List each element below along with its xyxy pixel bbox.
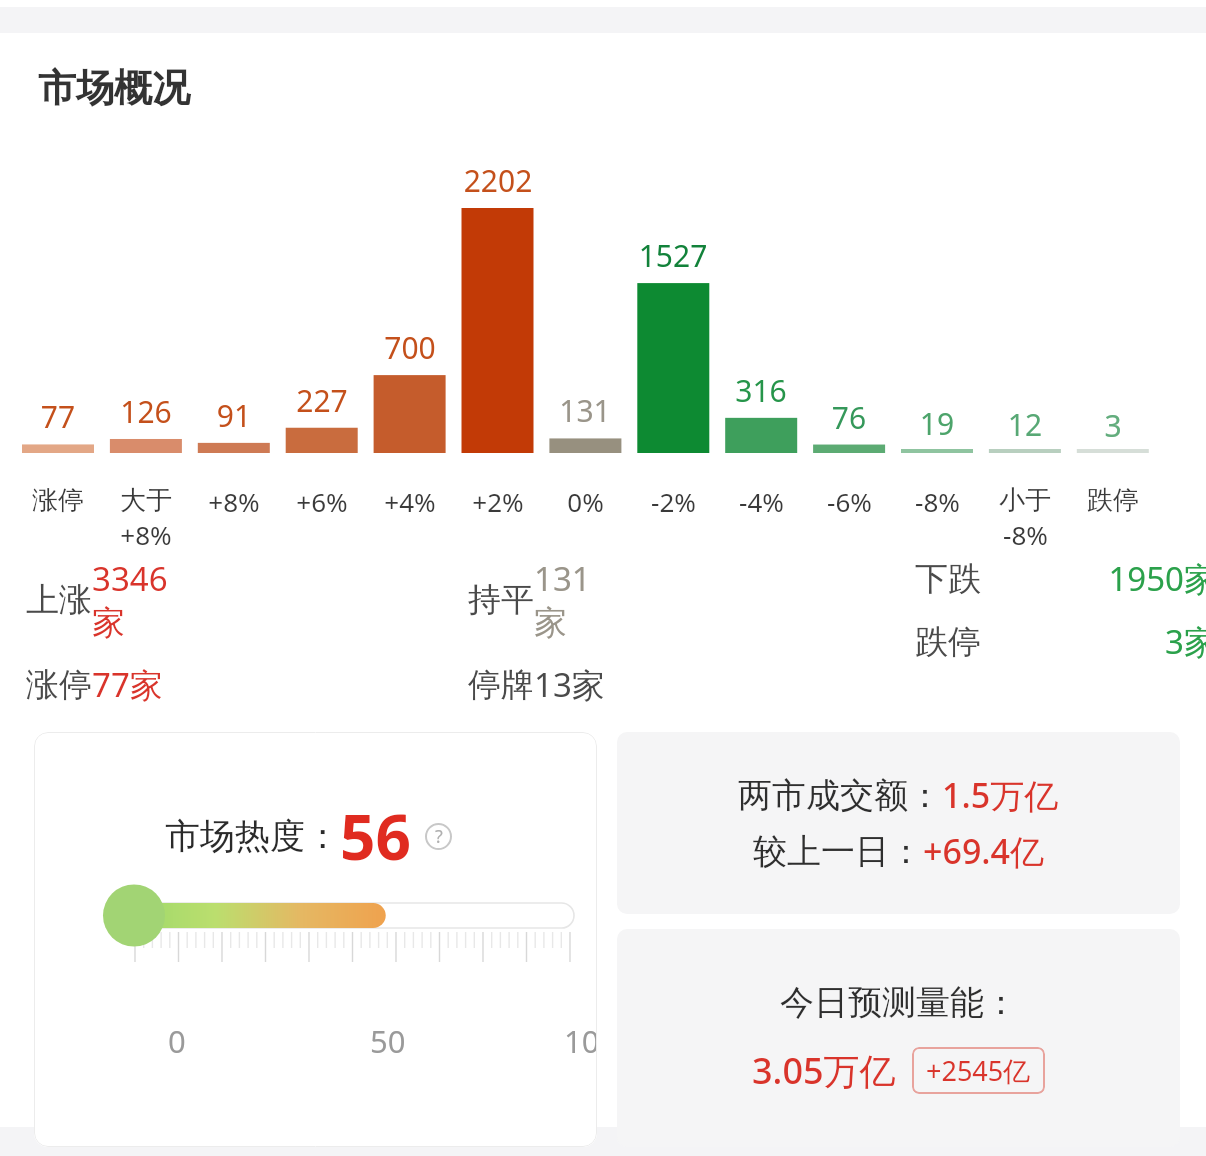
staticText: 2202: [454, 160, 542, 201]
staticText: 跌停: [915, 621, 981, 663]
staticText: 19: [893, 403, 981, 444]
button[interactable]: 大于: [102, 484, 190, 552]
button[interactable]: -8%: [893, 484, 981, 519]
button[interactable]: -4%: [717, 484, 805, 519]
button[interactable]: -2%: [629, 484, 717, 519]
button[interactable]: 跌停: [915, 619, 1206, 664]
staticText: 今日预测量能：: [780, 981, 1018, 1024]
staticText: 下跌: [915, 558, 981, 600]
button[interactable]: 持平: [468, 556, 606, 644]
staticText: 131: [541, 390, 629, 431]
staticText: 大于: [120, 484, 172, 517]
staticText: 77家: [92, 662, 174, 707]
staticText: 市场概况: [38, 64, 190, 112]
staticText: 两市成交额：: [738, 774, 942, 817]
staticText: 0%: [567, 484, 604, 519]
staticText: 市场热度：: [165, 814, 340, 858]
staticText: 3346家: [92, 556, 174, 644]
staticText: 涨停: [32, 484, 84, 517]
staticText: +4%: [384, 484, 436, 519]
staticText: 77: [14, 396, 102, 437]
staticText: -8%: [1003, 517, 1048, 552]
button[interactable]: +4%: [366, 484, 454, 519]
staticText: -6%: [827, 484, 872, 519]
staticText: 316: [717, 370, 805, 411]
staticText: +6%: [296, 484, 348, 519]
staticText: 50: [370, 1020, 406, 1062]
button[interactable]: 两市成交额：: [617, 732, 1180, 914]
staticText: -2%: [651, 484, 696, 519]
staticText: 3.05万亿: [752, 1046, 896, 1095]
button[interactable]: 跌停: [1069, 484, 1157, 517]
staticText: 小于: [999, 484, 1051, 517]
staticText: 131家: [534, 556, 606, 644]
staticText: +2545亿: [926, 1052, 1031, 1089]
staticText: -4%: [739, 484, 784, 519]
staticText: 700: [366, 327, 454, 368]
staticText: -8%: [915, 484, 960, 519]
button[interactable]: +8%: [190, 484, 278, 519]
staticText: 13家: [534, 662, 606, 707]
staticText: 56: [340, 794, 411, 878]
staticText: 1950家: [981, 556, 1206, 601]
button[interactable]: -6%: [805, 484, 893, 519]
staticText: 1.5万亿: [942, 772, 1059, 818]
button[interactable]: +6%: [278, 484, 366, 519]
button[interactable]: 今日预测量能：: [617, 929, 1180, 1147]
button[interactable]: 市场热度：: [34, 732, 597, 1147]
button[interactable]: +2%: [454, 484, 542, 519]
button[interactable]: 涨停: [14, 484, 102, 517]
staticText: 91: [190, 395, 278, 436]
staticText: +69.4亿: [923, 828, 1045, 874]
button[interactable]: 下跌: [915, 556, 1206, 601]
staticText: 持平: [468, 579, 534, 621]
staticText: +8%: [120, 517, 172, 552]
staticText: 涨停: [26, 664, 92, 706]
button[interactable]: 小于: [981, 484, 1069, 552]
staticText: 上涨: [26, 579, 92, 621]
staticText: 12: [981, 404, 1069, 445]
button[interactable]: 帮助: [425, 823, 452, 850]
button[interactable]: 停牌: [468, 662, 606, 707]
staticText: 0: [168, 1020, 186, 1062]
staticText: 1527: [629, 235, 717, 276]
button[interactable]: 涨停: [26, 662, 174, 707]
staticText: 3家: [981, 619, 1206, 664]
button[interactable]: 0%: [541, 484, 629, 519]
staticText: 较上一日：: [753, 830, 923, 873]
button[interactable]: 上涨: [26, 556, 174, 644]
staticText: 100: [564, 1020, 597, 1062]
staticText: ?: [435, 824, 443, 849]
staticText: 停牌: [468, 664, 534, 706]
staticText: +2%: [472, 484, 524, 519]
staticText: 3: [1069, 405, 1157, 446]
staticText: 227: [278, 380, 366, 421]
staticText: 126: [102, 391, 190, 432]
staticText: 76: [805, 397, 893, 438]
staticText: +8%: [208, 484, 260, 519]
staticText: 跌停: [1087, 484, 1139, 517]
